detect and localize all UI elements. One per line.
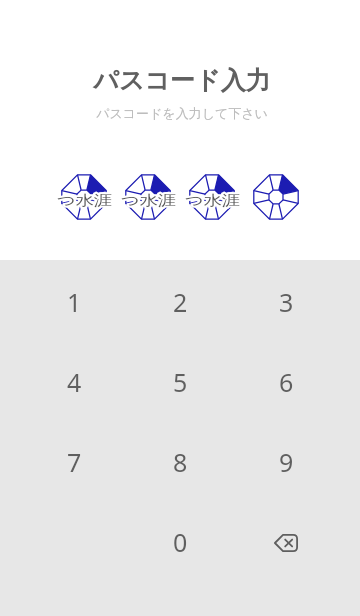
button[interactable]: 1 bbox=[21, 262, 127, 342]
button[interactable]: 9 bbox=[233, 422, 339, 502]
button[interactable]: 3 bbox=[233, 262, 339, 342]
staticText: つ水涯 bbox=[185, 192, 241, 208]
button[interactable]: 7 bbox=[21, 422, 127, 502]
staticText: 6 bbox=[279, 365, 294, 399]
button[interactable]: 8 bbox=[127, 422, 233, 502]
staticText: 8 bbox=[173, 445, 188, 479]
staticText: パスコード入力 bbox=[93, 65, 271, 96]
staticText: 5 bbox=[173, 365, 188, 399]
staticText: 4 bbox=[67, 365, 82, 399]
staticText: つ水涯 bbox=[57, 192, 113, 208]
button[interactable]: 0 bbox=[127, 502, 233, 582]
staticText: つ水涯 bbox=[121, 192, 177, 208]
staticText: つ水涯 bbox=[121, 192, 177, 208]
staticText: 7 bbox=[67, 445, 82, 479]
staticText: 2 bbox=[173, 285, 188, 319]
staticText: 1 bbox=[67, 285, 82, 319]
button[interactable]: Delete bbox=[233, 502, 339, 582]
staticText: つ水涯 bbox=[57, 192, 113, 208]
button[interactable]: 2 bbox=[127, 262, 233, 342]
button[interactable]: 6 bbox=[233, 342, 339, 422]
button[interactable]: 4 bbox=[21, 342, 127, 422]
button[interactable]: 5 bbox=[127, 342, 233, 422]
staticText: パスコードを入力して下さい bbox=[96, 105, 268, 121]
staticText: 0 bbox=[173, 525, 188, 559]
staticText: 3 bbox=[279, 285, 294, 319]
staticText: つ水涯 bbox=[185, 192, 241, 208]
staticText: 9 bbox=[279, 445, 294, 479]
